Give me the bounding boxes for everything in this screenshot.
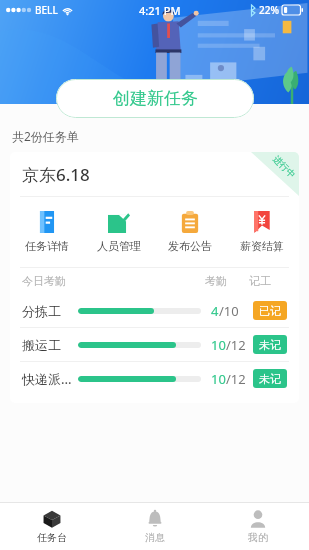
staticText: 10 [211,336,226,354]
staticText: /12 [226,336,246,354]
button[interactable]: 创建新任务 [56,79,254,118]
button[interactable]: 人员管理 [84,209,154,255]
staticText: 共2份任务单 [12,128,79,144]
button[interactable]: 分拣工 [10,294,299,327]
staticText: 进行中 [271,153,298,180]
button[interactable]: 未记 [253,369,287,388]
staticText: /10 [219,302,239,320]
staticText: BELL [35,3,58,17]
button[interactable]: 快递派... [10,362,299,395]
staticText: 我的 [248,531,268,544]
staticText: 10 [211,370,226,388]
button[interactable]: 任务详情 [12,209,82,255]
staticText: 分拣工 [22,303,74,319]
staticText: 记工 [249,274,287,288]
button[interactable]: 搬运工 [10,328,299,361]
staticText: 未记 [259,372,281,386]
staticText: 4:21 PM [139,3,181,18]
staticText: 22% [259,3,279,17]
staticText: 发布公告 [168,239,212,253]
button[interactable]: 消息 [103,503,206,550]
staticText: 人员管理 [97,239,141,253]
staticText: 搬运工 [22,337,74,353]
button[interactable]: 任务台 [0,503,103,550]
button[interactable]: 发布公告 [155,209,225,255]
button[interactable]: 薪资结算 [227,209,297,255]
staticText: 今日考勤 [22,274,66,288]
staticText: /12 [226,370,246,388]
staticText: 4 [211,302,219,320]
staticText: 任务台 [37,531,67,544]
staticText: 京东6.18 [22,163,90,186]
staticText: 未记 [259,338,281,352]
staticText: 快递派... [22,370,74,388]
button[interactable]: 我的 [206,503,309,550]
staticText: 消息 [145,531,165,544]
button[interactable]: 未记 [253,335,287,354]
staticText: 薪资结算 [240,239,284,253]
staticText: 创建新任务 [113,88,198,109]
button[interactable]: 已记 [253,301,287,320]
staticText: 考勤 [205,274,249,288]
staticText: 任务详情 [25,239,69,253]
staticText: 已记 [259,304,281,318]
